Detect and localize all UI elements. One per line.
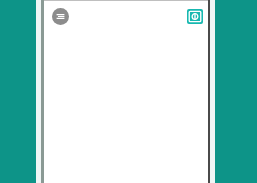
button[interactable]: Menu (52, 8, 69, 25)
button[interactable]: Payment (187, 9, 203, 24)
